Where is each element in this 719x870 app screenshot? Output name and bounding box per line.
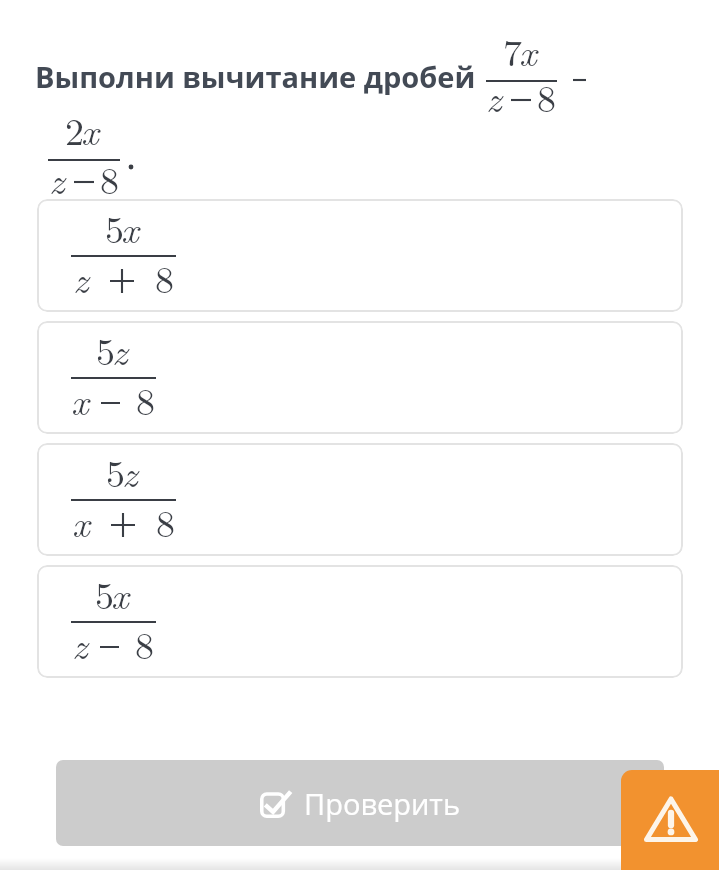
staticText: z xyxy=(49,151,65,205)
button[interactable]: Report a problem xyxy=(621,770,719,870)
staticText: 8 xyxy=(100,151,120,205)
staticText: z xyxy=(73,250,89,304)
staticText: Выполни вычитание дробей xyxy=(35,57,476,96)
staticText: 8 xyxy=(155,250,175,304)
button[interactable]: 5 xyxy=(37,199,683,312)
staticText: z xyxy=(122,444,138,498)
staticText: Проверить xyxy=(304,784,461,823)
staticText: 5 xyxy=(105,200,125,254)
staticText: x xyxy=(111,566,129,620)
staticText: 8 xyxy=(537,69,557,123)
button[interactable]: 5 xyxy=(37,565,683,678)
button[interactable]: Проверить xyxy=(56,760,664,846)
staticText: 2 xyxy=(65,102,85,156)
staticText: 8 xyxy=(156,494,176,548)
staticText: 5 xyxy=(95,566,115,620)
staticText: x xyxy=(72,494,90,548)
staticText: 8 xyxy=(136,372,156,426)
staticText: 5 xyxy=(96,322,116,376)
staticText: 5 xyxy=(106,444,126,498)
button[interactable]: 5 xyxy=(37,443,683,556)
staticText: z xyxy=(72,616,88,670)
staticText: 7 xyxy=(503,23,523,77)
staticText: x xyxy=(519,23,537,77)
staticText: 8 xyxy=(135,616,155,670)
staticText: x xyxy=(81,102,99,156)
staticText: x xyxy=(71,372,89,426)
staticText: z xyxy=(486,69,502,123)
staticText: z xyxy=(112,322,128,376)
staticText: x xyxy=(121,200,139,254)
button[interactable]: 5 xyxy=(37,321,683,434)
